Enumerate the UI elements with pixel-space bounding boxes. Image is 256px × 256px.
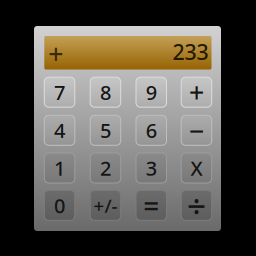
staticText: =	[143, 187, 159, 224]
button[interactable]: +/-	[90, 190, 121, 220]
staticText: 9	[146, 79, 157, 105]
button[interactable]: 9	[136, 77, 166, 107]
button[interactable]: 6	[136, 115, 166, 145]
button[interactable]: =	[136, 190, 166, 220]
button[interactable]: 1	[44, 153, 75, 183]
button[interactable]: −	[181, 115, 212, 145]
button[interactable]: 2	[90, 153, 121, 183]
staticText: +/-	[93, 193, 117, 218]
staticText: 5	[100, 117, 111, 144]
staticText: 7	[54, 79, 65, 105]
button[interactable]: 5	[90, 115, 121, 145]
staticText: 4	[54, 117, 65, 144]
staticText: −	[189, 113, 204, 148]
staticText: 233	[172, 38, 208, 66]
staticText: +	[48, 36, 63, 71]
button[interactable]: ÷	[181, 190, 212, 220]
button[interactable]: 4	[44, 115, 75, 145]
staticText: 1	[54, 155, 65, 181]
button[interactable]: +	[181, 77, 212, 107]
staticText: 6	[146, 117, 157, 144]
staticText: 3	[146, 155, 157, 181]
staticText: 0	[54, 192, 65, 219]
staticText: 2	[100, 155, 111, 181]
staticText: X	[190, 155, 202, 181]
staticText: 8	[100, 79, 111, 105]
staticText: +	[189, 74, 204, 110]
button[interactable]: 8	[90, 77, 121, 107]
button[interactable]: X	[181, 153, 212, 183]
button[interactable]: 7	[44, 77, 75, 107]
button[interactable]: 3	[136, 153, 166, 183]
staticText: ÷	[187, 183, 206, 228]
button[interactable]: 0	[44, 190, 75, 220]
